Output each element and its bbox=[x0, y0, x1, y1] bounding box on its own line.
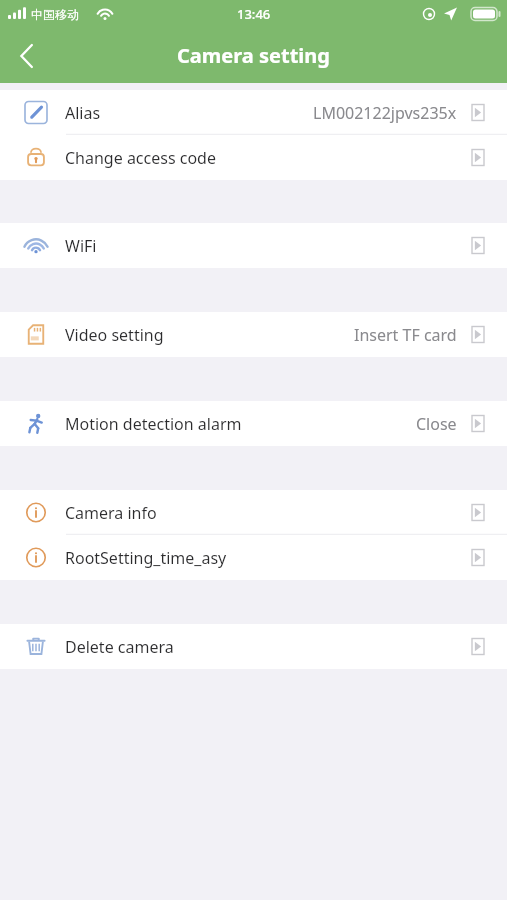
button[interactable]: Video setting bbox=[0, 312, 507, 357]
staticText: Camera setting bbox=[0, 42, 507, 69]
staticText: LM002122jpvs235x bbox=[313, 102, 457, 124]
staticText: WiFi bbox=[65, 235, 97, 257]
button[interactable]: Change access code bbox=[0, 135, 507, 180]
staticText: Motion detection alarm bbox=[65, 413, 242, 435]
button[interactable]: Back bbox=[0, 32, 48, 80]
staticText: 中国移动 bbox=[31, 7, 79, 22]
button[interactable]: RootSetting_time_asy bbox=[0, 535, 507, 580]
staticText: Close bbox=[416, 413, 457, 435]
staticText: Alias bbox=[65, 102, 101, 124]
staticText: Insert TF card bbox=[354, 324, 457, 346]
button[interactable]: Delete camera bbox=[0, 624, 507, 669]
staticText: 13:46 bbox=[237, 5, 271, 23]
button[interactable]: Motion detection alarm bbox=[0, 401, 507, 446]
staticText: Delete camera bbox=[65, 636, 174, 658]
staticText: Video setting bbox=[65, 324, 164, 346]
button[interactable]: Camera info bbox=[0, 490, 507, 535]
staticText: RootSetting_time_asy bbox=[65, 547, 227, 569]
button[interactable]: Alias bbox=[0, 90, 507, 135]
staticText: Change access code bbox=[65, 147, 216, 169]
staticText: Camera info bbox=[65, 502, 157, 524]
button[interactable]: WiFi bbox=[0, 223, 507, 268]
